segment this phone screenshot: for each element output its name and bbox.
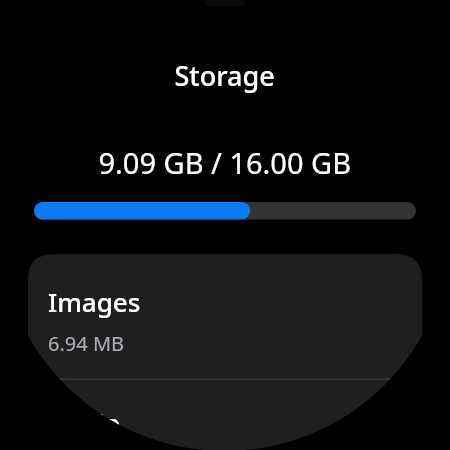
button[interactable]: Storage list	[0, 0, 450, 450]
